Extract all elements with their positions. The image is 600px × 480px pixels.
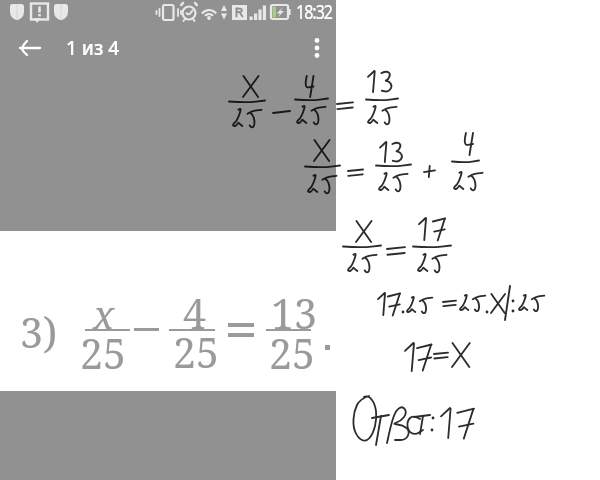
staticText: x — [93, 287, 115, 340]
button[interactable]: Back — [8, 26, 52, 70]
staticText: 13 — [271, 285, 317, 341]
staticText: 1 из 4 — [66, 35, 120, 61]
staticText: 25 — [80, 325, 126, 381]
staticText: 18:32 — [296, 0, 332, 26]
staticText: 25 — [269, 325, 315, 381]
staticText: 3) — [20, 304, 58, 360]
staticText: 25 — [173, 324, 219, 380]
staticText: 4 — [183, 285, 206, 341]
button[interactable]: More options — [295, 26, 339, 70]
